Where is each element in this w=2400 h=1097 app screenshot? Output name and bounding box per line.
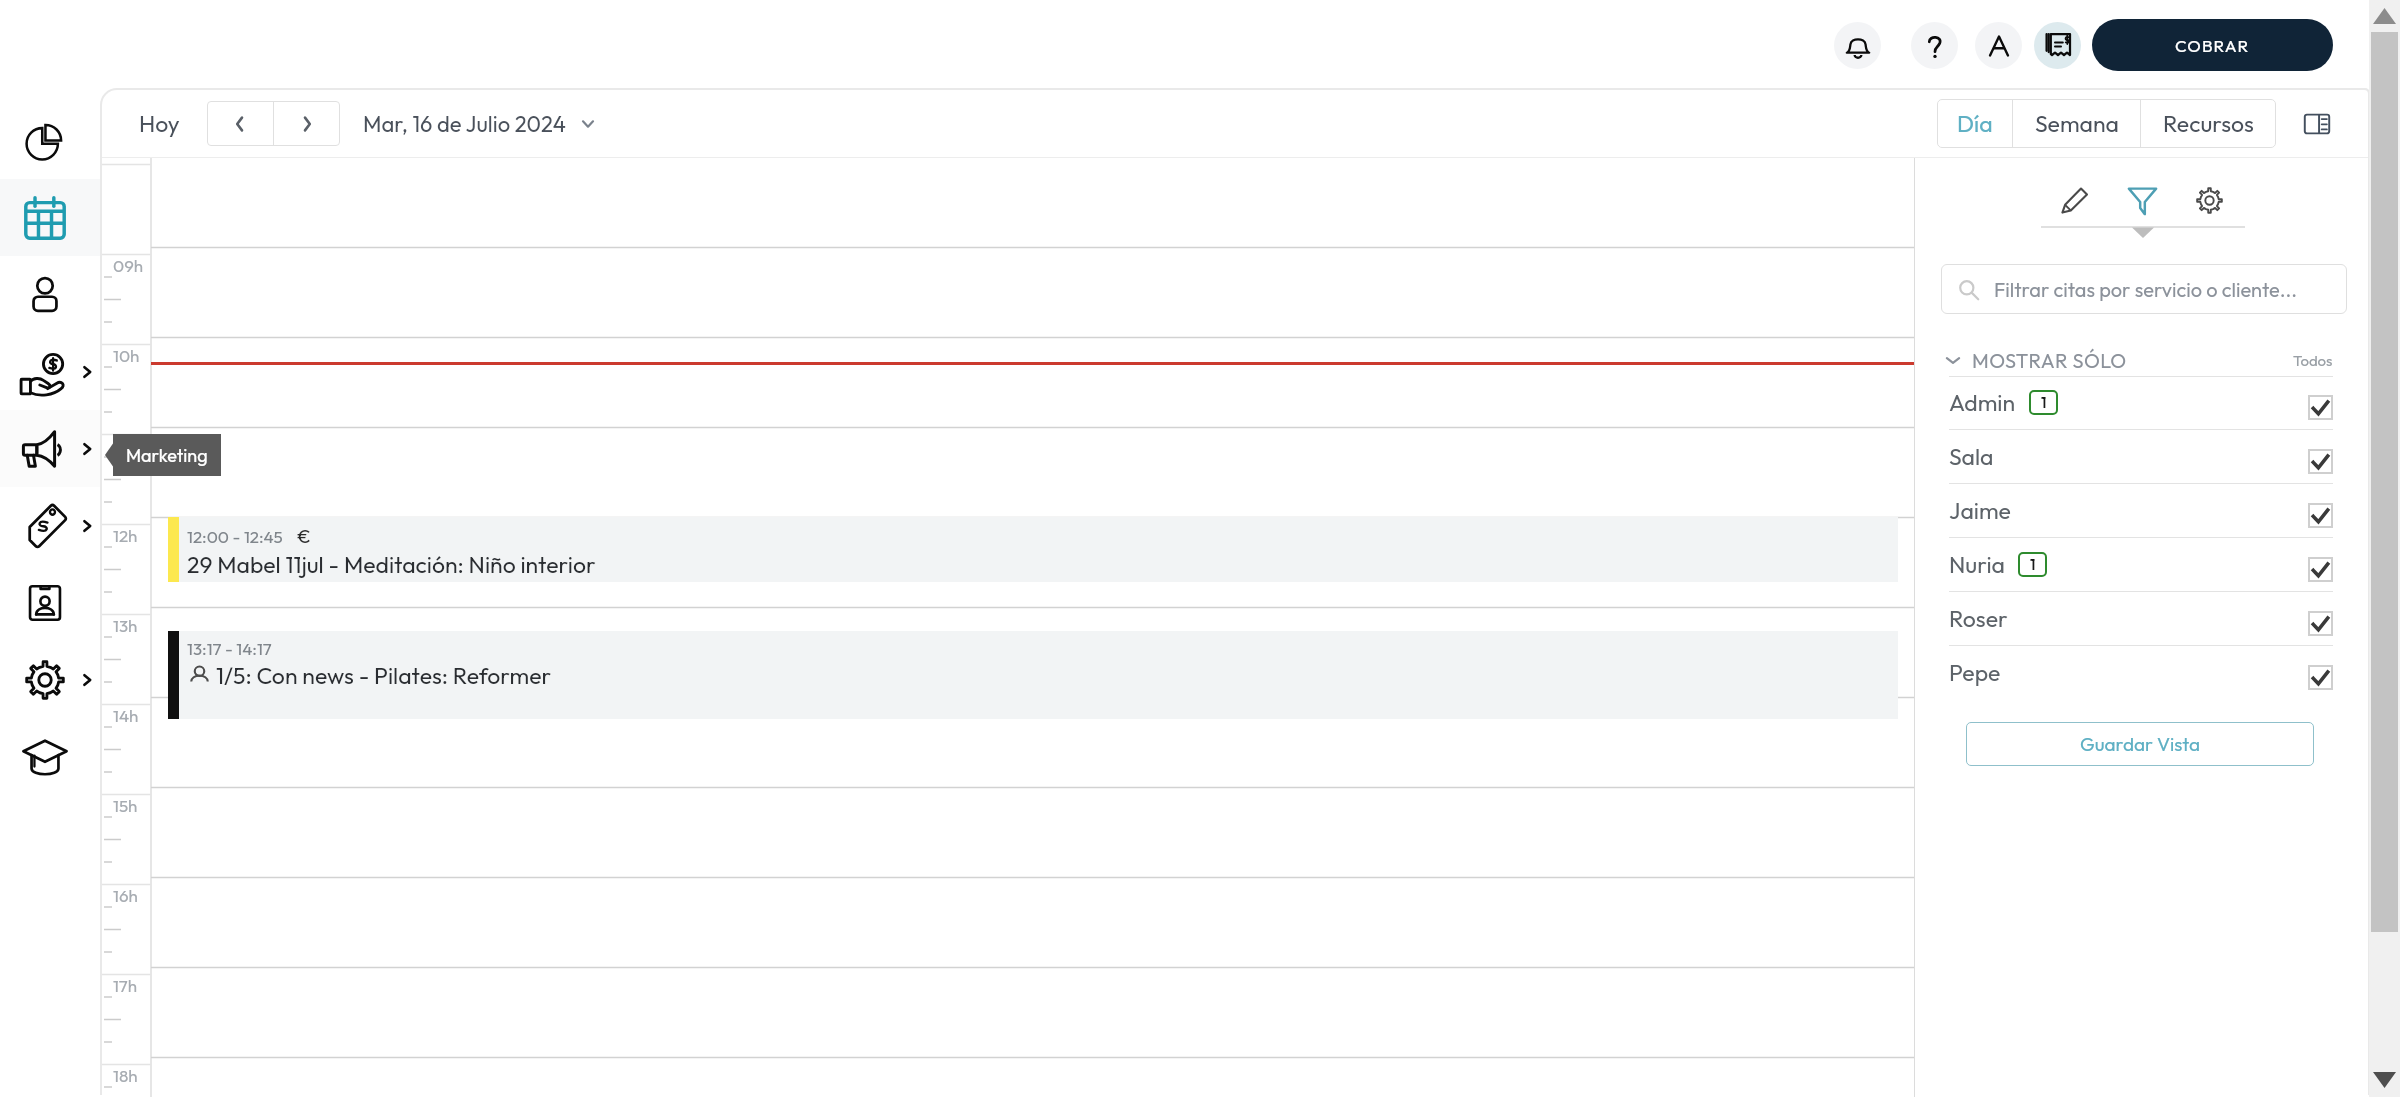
staticText: 29 Mabel 11jul - Meditación: Niño interi… (187, 550, 596, 579)
staticText: 17h (113, 975, 138, 996)
staticText: Guardar Vista (2080, 732, 2201, 756)
staticText: Admin (1949, 388, 2016, 417)
staticText: Todos (2293, 351, 2333, 370)
button[interactable]: Next day (274, 101, 340, 146)
staticText: 1 (2030, 555, 2036, 574)
staticText: Semana (2035, 109, 2119, 138)
staticText: Sala (1949, 442, 1994, 471)
staticText: 15h (113, 795, 138, 816)
button[interactable]: 13:17 - 14:17 (168, 631, 1898, 719)
staticText: € (297, 524, 311, 548)
staticText: 18h (113, 1065, 138, 1086)
button[interactable]: Menu item (0, 487, 101, 564)
staticText: Roser (1949, 604, 2008, 633)
staticText: Jaime (1949, 496, 2011, 525)
button[interactable]: Hoy (125, 99, 194, 148)
staticText: Marketing (126, 444, 208, 467)
staticText: Filtrar citas por servicio o cliente... (1994, 277, 2298, 302)
button[interactable]: Semana (2013, 99, 2140, 148)
button[interactable]: Menu item (0, 718, 101, 795)
button[interactable]: Menu item (0, 564, 101, 641)
staticText: Nuria (1949, 550, 2005, 579)
button[interactable]: Menu item (0, 102, 101, 179)
staticText: Mar, 16 de Julio 2024 (363, 110, 567, 138)
button[interactable]: Edit (2055, 180, 2095, 220)
staticText: MOSTRAR SÓLO (1972, 348, 2127, 373)
button[interactable]: Recursos (2141, 99, 2276, 148)
button[interactable]: Language (1975, 22, 2022, 69)
button[interactable]: Filter (2122, 180, 2162, 220)
button[interactable]: Menu item (0, 179, 101, 256)
button[interactable]: COBRAR (2092, 19, 2333, 71)
staticText: 11h (113, 435, 135, 456)
button[interactable]: Día (1937, 99, 2012, 148)
staticText: 09h (113, 255, 144, 276)
button[interactable]: Nuria (1949, 538, 2333, 591)
staticText: Hoy (139, 109, 180, 138)
button[interactable]: Notifications (1834, 22, 1881, 69)
staticText: 1 (2041, 393, 2047, 412)
button[interactable]: Help (1911, 22, 1958, 69)
button[interactable]: Menu item (0, 410, 101, 487)
staticText: Recursos (2163, 109, 2254, 138)
staticText: 12h (113, 525, 138, 546)
staticText: Día (1957, 109, 1993, 138)
staticText: 12:00 - 12:45 (187, 526, 283, 547)
staticText: 1/5: Con news - Pilates: Reformer (216, 661, 552, 690)
button[interactable]: Roser (1949, 592, 2333, 645)
staticText: 10h (113, 345, 140, 366)
staticText: 13:17 - 14:17 (187, 638, 272, 659)
button[interactable]: Admin (1949, 376, 2333, 429)
staticText: Pepe (1949, 658, 2001, 687)
button[interactable]: Menu item (0, 256, 101, 333)
button[interactable]: Menu item (0, 641, 101, 718)
button[interactable]: Menu item (0, 333, 101, 410)
button[interactable]: Mar, 16 de Julio 2024 (363, 102, 594, 146)
button[interactable]: Settings (2189, 180, 2229, 220)
button[interactable]: Previous day (207, 101, 273, 146)
staticText: COBRAR (2175, 35, 2250, 56)
staticText: 13h (113, 615, 138, 636)
button[interactable]: Jaime (1949, 484, 2333, 537)
button[interactable]: Filtrar citas por servicio o cliente... (1941, 264, 2347, 314)
staticText: 14h (113, 705, 139, 726)
button[interactable]: Invoices (2034, 22, 2081, 69)
staticText: 16h (113, 885, 138, 906)
button[interactable]: Sala (1949, 430, 2333, 483)
button[interactable]: Guardar Vista (1966, 722, 2314, 766)
button[interactable]: Pepe (1949, 646, 2333, 699)
button[interactable]: Toggle side panel (2298, 105, 2336, 143)
button[interactable]: 12:00 - 12:45 (168, 517, 1898, 582)
